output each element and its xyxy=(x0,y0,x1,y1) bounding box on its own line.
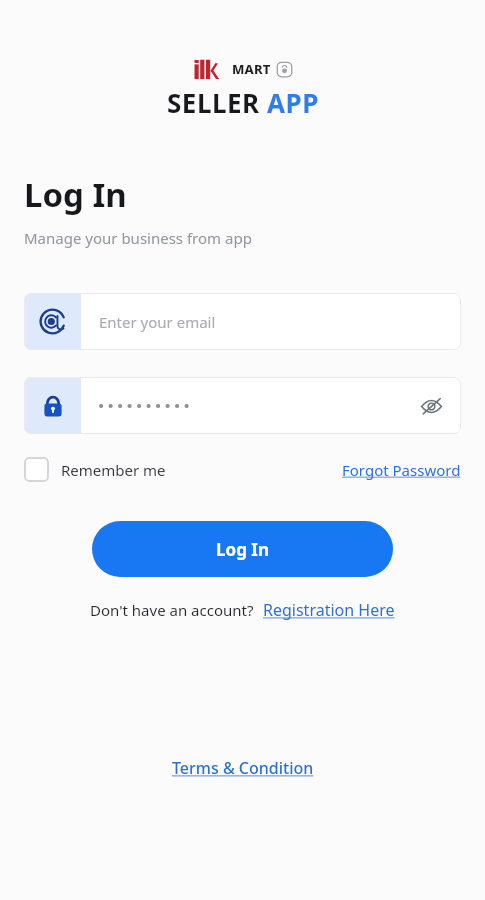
staticText: Registration Here xyxy=(263,599,395,621)
button[interactable]: Log In xyxy=(92,521,393,577)
staticText: Remember me xyxy=(61,460,166,480)
staticText: Terms & Condition xyxy=(172,757,314,779)
staticText: Don't have an account? xyxy=(90,600,254,620)
button[interactable]: Registration Here xyxy=(263,599,395,621)
button[interactable]: Password xyxy=(24,377,461,434)
button[interactable]: Show password xyxy=(409,384,453,428)
staticText: SELLER xyxy=(167,85,267,120)
staticText: Manage your business from app xyxy=(24,228,252,248)
staticText: MART xyxy=(232,60,271,78)
staticText: Enter your email xyxy=(99,312,216,332)
button[interactable]: Email xyxy=(24,293,461,350)
other: Password xyxy=(24,377,81,434)
button[interactable]: Terms & Condition xyxy=(172,757,314,779)
staticText: APP xyxy=(267,85,319,120)
staticText: Forgot Password xyxy=(342,460,461,480)
button[interactable]: Remember me xyxy=(24,457,166,482)
staticText: Log In xyxy=(24,172,127,217)
staticText: Log In xyxy=(216,538,269,561)
other: Email xyxy=(24,293,81,350)
button[interactable]: Forgot Password xyxy=(342,460,461,480)
